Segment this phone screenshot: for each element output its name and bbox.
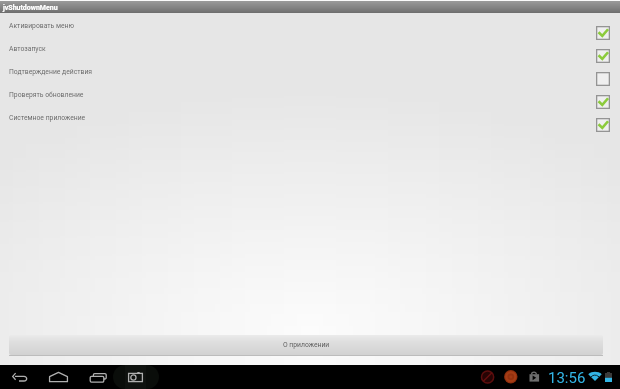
button[interactable]: Активировать меню: [0, 22, 620, 45]
button[interactable]: О приложении: [9, 335, 603, 355]
staticText: О приложении: [283, 341, 330, 349]
button[interactable]: jvShutdownMenu: [0, 1, 620, 13]
button[interactable]: Подтверждение действия: [0, 68, 620, 91]
staticText: Подтверждение действия: [9, 68, 93, 76]
button[interactable]: Системное приложение: [0, 114, 620, 137]
button[interactable]: Back: [6, 367, 33, 387]
button[interactable]: Home: [45, 367, 72, 387]
staticText: jvShutdownMenu: [3, 4, 58, 12]
staticText: Проверять обновление: [9, 91, 84, 99]
button[interactable]: Проверять обновление: [0, 91, 620, 114]
button[interactable]: Screenshot: [122, 367, 149, 387]
staticText: Активировать меню: [9, 22, 75, 30]
button[interactable]: Автозапуск: [0, 45, 620, 68]
staticText: Автозапуск: [9, 45, 46, 53]
staticText: 13:56: [548, 369, 586, 387]
button[interactable]: Recent apps: [85, 368, 112, 388]
staticText: Системное приложение: [9, 114, 86, 122]
